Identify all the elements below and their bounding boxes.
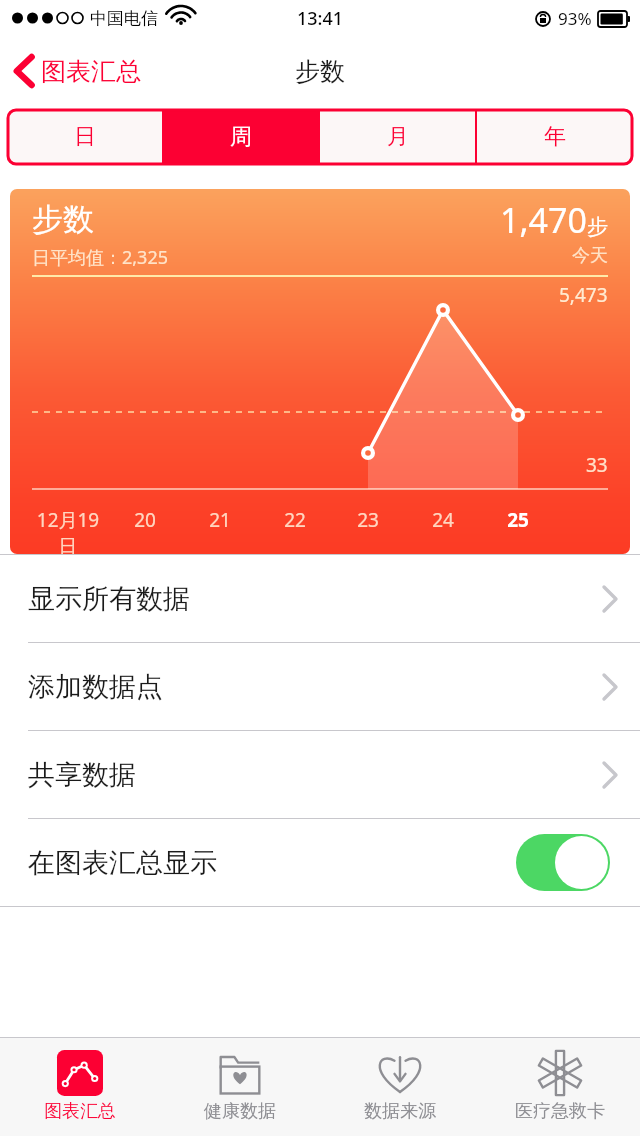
button[interactable]: 健康数据	[160, 1038, 320, 1136]
button[interactable]: 图表汇总	[0, 1038, 160, 1136]
staticText: 图表汇总	[44, 1100, 116, 1123]
staticText: 共享数据	[28, 758, 136, 792]
staticText: 步	[587, 214, 608, 240]
button[interactable]: 月	[320, 110, 475, 164]
staticText: 健康数据	[204, 1100, 276, 1123]
staticText: 今天	[572, 244, 608, 267]
other: 医疗急救卡	[536, 1049, 584, 1097]
other: 图表汇总	[57, 1050, 103, 1096]
staticText: 23	[328, 507, 408, 533]
button[interactable]: 周	[164, 110, 318, 164]
staticText: 12月19日	[28, 507, 108, 554]
staticText: 25	[478, 507, 558, 533]
staticText: 33	[586, 452, 608, 478]
staticText: 日	[74, 123, 96, 151]
staticText: 月	[387, 123, 409, 151]
button[interactable]: 年	[477, 110, 632, 164]
button[interactable]: 步数	[10, 189, 630, 554]
staticText: 日平均值：2,325	[32, 245, 169, 270]
button[interactable]: 显示所有数据	[0, 555, 640, 642]
staticText: 93%	[558, 7, 592, 30]
staticText: 中国电信	[90, 8, 158, 29]
other: 健康数据	[217, 1052, 263, 1094]
button[interactable]: 日	[8, 110, 162, 164]
staticText: 1,470	[500, 197, 587, 243]
staticText: 13:41	[297, 6, 344, 31]
button[interactable]: 在图表汇总显示	[0, 819, 640, 906]
staticText: 24	[403, 507, 483, 533]
staticText: 步数	[32, 200, 94, 239]
button[interactable]: 添加数据点	[0, 643, 640, 730]
button[interactable]: 图表汇总	[0, 41, 153, 101]
staticText: 20	[105, 507, 185, 533]
staticText: 数据来源	[364, 1100, 436, 1123]
staticText: 图表汇总	[41, 56, 141, 87]
button[interactable]: 数据来源	[320, 1038, 480, 1136]
staticText: 周	[230, 123, 252, 151]
button[interactable]: 医疗急救卡	[480, 1038, 640, 1136]
staticText: 年	[544, 123, 566, 151]
staticText: 22	[255, 507, 335, 533]
staticText: 显示所有数据	[28, 582, 190, 616]
staticText: 添加数据点	[28, 670, 163, 704]
staticText: 医疗急救卡	[515, 1100, 605, 1123]
button[interactable]: 共享数据	[0, 731, 640, 818]
other: 数据来源	[375, 1051, 425, 1095]
staticText: 步数	[295, 56, 345, 87]
staticText: 5,473	[559, 282, 608, 308]
staticText: 21	[180, 507, 260, 533]
staticText: 在图表汇总显示	[28, 846, 217, 880]
button[interactable]: 在图表汇总显示 开关	[516, 834, 610, 891]
